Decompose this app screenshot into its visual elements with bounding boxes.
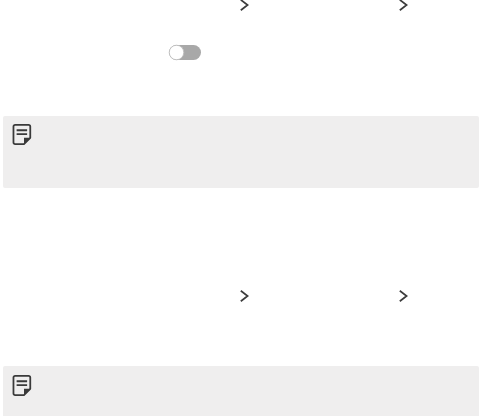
button[interactable]: Toggle [169, 45, 201, 60]
button[interactable]: Open [234, 0, 254, 15]
other: Note [12, 124, 33, 145]
button[interactable]: Open [393, 0, 413, 15]
button[interactable]: Note [3, 116, 479, 188]
button[interactable]: Open [234, 286, 254, 306]
other: Note [12, 375, 33, 396]
button[interactable]: Open [393, 286, 413, 306]
button[interactable]: Note [3, 366, 479, 416]
